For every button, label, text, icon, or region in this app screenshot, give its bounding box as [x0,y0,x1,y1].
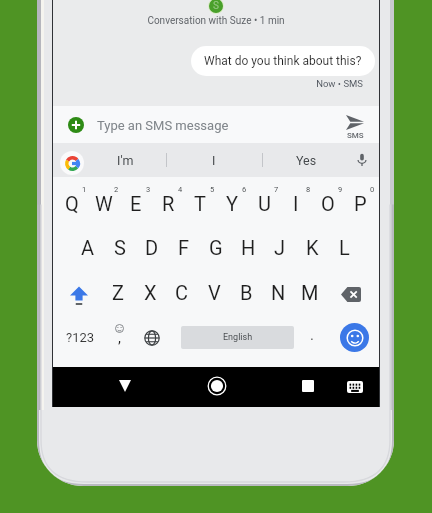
staticText: Yes [296,153,317,168]
staticText: L [339,236,350,259]
staticText: Z [112,281,124,304]
staticText: R [162,192,175,215]
button[interactable]: C [166,270,198,315]
staticText: 2 [114,185,119,194]
staticText: I [293,192,299,215]
button[interactable]: N [262,270,294,315]
button[interactable]: Recent apps [287,367,328,407]
staticText: M [301,281,319,304]
button[interactable]: Attach [68,117,84,133]
staticText: 7 [274,185,279,194]
staticText: ?123 [66,330,95,345]
staticText: K [306,236,319,259]
button[interactable]: English [167,315,289,360]
button[interactable]: Voice input [349,143,374,177]
staticText: D [145,236,159,259]
staticText: 6 [242,185,247,194]
button[interactable]: , [105,315,134,360]
staticText: U [258,192,271,215]
button[interactable]: F [168,225,200,270]
staticText: 5 [210,185,215,194]
staticText: 1 [82,185,87,194]
button[interactable]: Shift [56,270,102,315]
button[interactable]: Send SMS [346,115,364,139]
staticText: 3 [146,185,151,194]
staticText: I'm [117,153,134,168]
button[interactable]: Change language [136,315,167,360]
button[interactable]: B [230,270,262,315]
button[interactable]: What do you think about this? [191,46,375,76]
button[interactable]: Yes [263,143,349,177]
staticText: Type an SMS message [97,118,229,133]
staticText: G [209,236,223,259]
button[interactable]: J [264,225,296,270]
button[interactable]: Hide keyboard [104,367,145,407]
staticText: 0 [370,185,375,194]
staticText: 9 [338,185,343,194]
button[interactable]: R [152,180,184,225]
staticText: Conversation with Suze • 1 min [53,15,379,27]
button[interactable]: ?123 [56,315,105,360]
staticText: S [114,236,126,259]
button[interactable]: A [72,225,104,270]
staticText: C [175,281,189,304]
staticText: Q [65,192,79,215]
staticText: H [241,236,256,259]
staticText: W [95,192,113,215]
staticText: B [240,281,253,304]
button[interactable]: Google [60,151,84,175]
staticText: 4 [178,185,183,194]
button[interactable]: L [328,225,360,270]
button[interactable]: I [167,143,261,177]
button[interactable]: Switch keyboard [334,367,375,407]
staticText: English [223,332,253,343]
staticText: . [310,326,314,344]
button[interactable]: Y [216,180,248,225]
button[interactable]: P [344,180,376,225]
button[interactable]: S [104,225,136,270]
button[interactable]: D [136,225,168,270]
staticText: Now • SMS [53,78,363,89]
staticText: , [118,329,121,347]
staticText: X [144,281,157,304]
button[interactable]: E [120,180,152,225]
button[interactable]: T [184,180,216,225]
button[interactable]: O [312,180,344,225]
staticText: 8 [306,185,311,194]
button[interactable]: X [134,270,166,315]
button[interactable]: Backspace [326,270,376,315]
button[interactable]: I'm [91,143,160,177]
staticText: A [81,236,95,259]
button[interactable]: K [296,225,328,270]
staticText: S [213,0,219,12]
staticText: E [130,192,142,215]
button[interactable]: V [198,270,230,315]
staticText: O [321,192,335,215]
button[interactable]: M [294,270,326,315]
button[interactable]: . [297,315,327,360]
staticText: F [178,236,190,259]
button[interactable]: I [280,180,312,225]
staticText: J [274,236,286,259]
staticText: P [354,192,367,215]
button[interactable]: Z [102,270,134,315]
staticText: N [271,281,286,304]
button[interactable]: Home [196,367,237,407]
staticText: V [208,281,221,304]
button[interactable]: Emoji [327,315,380,360]
staticText: SMS [347,131,364,140]
staticText: I [212,153,216,168]
button[interactable]: G [200,225,232,270]
staticText: T [194,192,206,215]
staticText: Y [226,192,239,215]
button[interactable]: H [232,225,264,270]
staticText: What do you think about this? [204,54,362,68]
button[interactable]: W [88,180,120,225]
button[interactable]: U [248,180,280,225]
button[interactable]: Q [56,180,88,225]
